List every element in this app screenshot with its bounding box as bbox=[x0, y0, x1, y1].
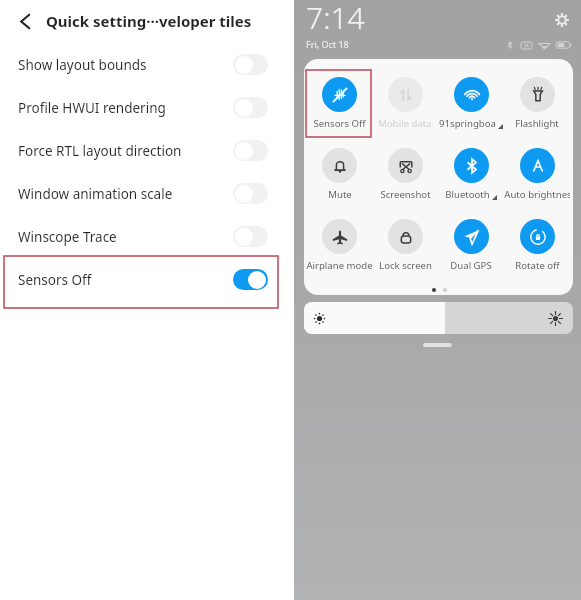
staticText: Lock screen bbox=[379, 259, 432, 272]
staticText: Bluetooth bbox=[445, 188, 490, 201]
staticText: Sensors Off bbox=[313, 117, 366, 130]
button[interactable]: Sensors Off bbox=[0, 258, 294, 301]
staticText: Sensors Off bbox=[18, 271, 233, 289]
button[interactable]: Back bbox=[5, 1, 45, 41]
button[interactable]: 91springboa bbox=[438, 77, 504, 133]
staticText: Rotate off bbox=[515, 259, 560, 272]
staticText: Dual GPS bbox=[450, 259, 492, 272]
staticText: Mobile data bbox=[378, 117, 432, 130]
button[interactable]: Profile HWUI rendering bbox=[0, 86, 294, 129]
staticText: Profile HWUI rendering bbox=[18, 99, 233, 117]
button[interactable]: Winscope Trace bbox=[0, 215, 294, 258]
staticText: Screenshot bbox=[380, 188, 431, 201]
button[interactable]: Window animation scale bbox=[0, 172, 294, 215]
button[interactable]: Sensors Off bbox=[306, 77, 372, 133]
staticText: 7:14 bbox=[306, 0, 365, 38]
staticText: Airplane mode bbox=[306, 259, 372, 272]
staticText: Show layout bounds bbox=[18, 56, 233, 74]
button[interactable]: Show layout bounds bbox=[0, 43, 294, 86]
staticText: Force RTL layout direction bbox=[18, 142, 233, 160]
button[interactable] bbox=[304, 302, 573, 334]
staticText: Mute bbox=[328, 188, 352, 201]
button[interactable]: Screenshot bbox=[372, 148, 438, 204]
button[interactable]: Airplane mode bbox=[306, 219, 372, 275]
button[interactable]: Auto brightnes bbox=[504, 148, 570, 204]
staticText: Window animation scale bbox=[18, 185, 233, 203]
button[interactable]: Flashlight bbox=[504, 77, 570, 133]
button[interactable]: Bluetooth bbox=[438, 148, 504, 204]
button[interactable]: Force RTL layout direction bbox=[0, 129, 294, 172]
button[interactable]: Settings bbox=[550, 8, 574, 32]
staticText: Flashlight bbox=[515, 117, 559, 130]
button[interactable]: Lock screen bbox=[372, 219, 438, 275]
button[interactable]: Mute bbox=[306, 148, 372, 204]
staticText: Quick setting···veloper tiles bbox=[46, 11, 252, 31]
button[interactable]: Dual GPS bbox=[438, 219, 504, 275]
staticText: Fri, Oct 18 bbox=[306, 38, 349, 50]
staticText: 91springboa bbox=[439, 117, 496, 130]
button[interactable]: Mobile data bbox=[372, 77, 438, 133]
staticText: Winscope Trace bbox=[18, 228, 233, 246]
staticText: Auto brightnes bbox=[504, 188, 570, 201]
button[interactable]: Rotate off bbox=[504, 219, 570, 275]
